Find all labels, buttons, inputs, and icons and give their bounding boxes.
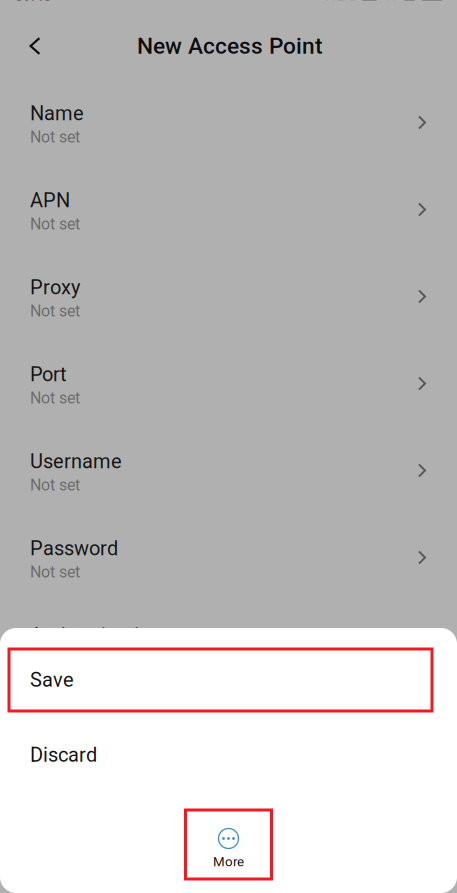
button[interactable]: APN: [0, 169, 457, 256]
staticText: Proxy: [30, 276, 80, 299]
staticText: Not set: [30, 563, 80, 581]
staticText: Authentication type: [30, 624, 204, 647]
staticText: Not set: [30, 389, 80, 407]
button[interactable]: Back: [12, 23, 58, 69]
staticText: Not set: [30, 302, 80, 320]
staticText: Not set: [30, 215, 80, 233]
button[interactable]: Name: [0, 82, 457, 169]
button[interactable]: Password: [0, 517, 457, 604]
staticText: Name: [30, 102, 84, 125]
staticText: New Access Point: [137, 33, 323, 59]
staticText: VoLTE: [323, 0, 356, 3]
button[interactable]: More: [185, 810, 271, 879]
button[interactable]: Save: [0, 649, 457, 711]
button[interactable]: Proxy: [0, 256, 457, 343]
staticText: APN: [30, 189, 70, 212]
button[interactable]: Port: [0, 343, 457, 430]
staticText: Not set: [30, 476, 80, 494]
staticText: 4G: [383, 0, 398, 3]
staticText: 09:45 • •: [15, 0, 77, 5]
button[interactable]: Username: [0, 430, 457, 517]
staticText: More: [213, 854, 244, 870]
staticText: Username: [30, 450, 122, 473]
staticText: Password: [30, 537, 118, 560]
staticText: Discard: [30, 743, 97, 767]
staticText: Save: [30, 668, 74, 692]
button[interactable]: Authentication type: [0, 604, 457, 691]
staticText: Not set: [30, 128, 80, 146]
staticText: Port: [30, 363, 67, 386]
button[interactable]: Discard: [0, 724, 457, 786]
staticText: Not set: [30, 650, 80, 668]
